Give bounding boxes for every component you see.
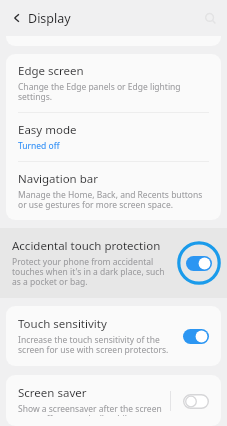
staticText: Accidental touch protection: [12, 238, 161, 254]
button[interactable]: Touch sensitivity: [6, 306, 221, 366]
staticText: Increase the touch sensitivity of the sc…: [18, 334, 171, 356]
staticText: Screen saver: [18, 385, 87, 401]
button[interactable]: Screen saver: [6, 375, 221, 426]
staticText: Turned off: [18, 140, 60, 152]
staticText: Touch sensitivity: [18, 316, 107, 332]
staticText: Protect your phone from accidental touch…: [12, 256, 171, 288]
staticText: Show a screensaver after the screen turn…: [18, 403, 162, 416]
staticText: Easy mode: [18, 122, 77, 138]
button[interactable]: Back: [4, 5, 30, 31]
button[interactable]: Navigation bar: [6, 162, 221, 220]
staticText: Display: [28, 10, 71, 27]
staticText: Navigation bar: [18, 171, 98, 187]
staticText: Manage the Home, Back, and Recents butto…: [18, 189, 209, 211]
staticText: Change the Edge panels or Edge lighting …: [18, 81, 209, 103]
staticText: Edge screen: [18, 63, 84, 79]
button[interactable]: Edge screen: [6, 54, 221, 112]
button[interactable]: Easy mode: [6, 113, 221, 161]
button[interactable]: Accidental touch protection: [0, 228, 227, 298]
